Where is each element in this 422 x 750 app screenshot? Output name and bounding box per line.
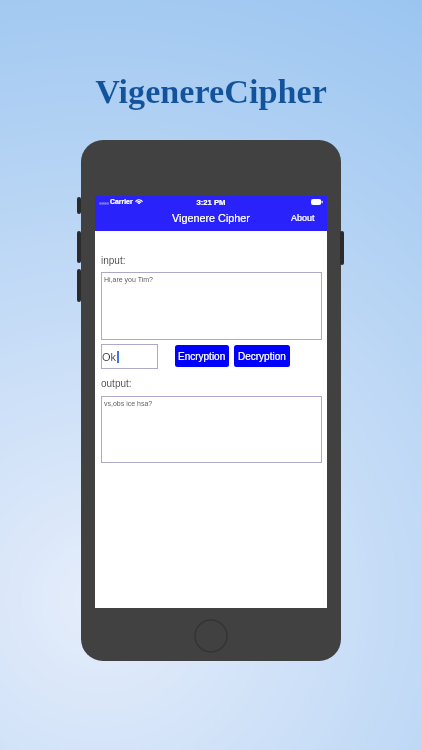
staticText: Carrier xyxy=(110,198,133,206)
staticText: Ok xyxy=(102,351,117,363)
staticText: vs,obs ice hsa? xyxy=(104,400,153,408)
staticText: Vigenere Cipher xyxy=(95,212,327,224)
button[interactable]: Ok xyxy=(101,344,158,369)
button[interactable]: vs,obs ice hsa? xyxy=(101,396,322,463)
staticText: 3:21 PM xyxy=(95,198,327,207)
other: Wi-Fi signal xyxy=(135,198,143,204)
staticText: VigenereCipher xyxy=(0,73,422,111)
other: Battery xyxy=(311,199,323,205)
staticText: output: xyxy=(101,378,132,389)
button[interactable]: About xyxy=(284,209,322,226)
button[interactable]: Decryption xyxy=(234,345,290,367)
button[interactable]: Hi,are you Tim? xyxy=(101,272,322,340)
staticText: Decryption xyxy=(238,351,286,362)
staticText: input: xyxy=(101,255,126,266)
button[interactable]: Encryption xyxy=(175,345,229,367)
staticText: Encryption xyxy=(178,351,226,362)
other: Signal strength xyxy=(99,202,109,205)
staticText: Hi,are you Tim? xyxy=(104,276,154,284)
staticText: About xyxy=(291,213,315,223)
